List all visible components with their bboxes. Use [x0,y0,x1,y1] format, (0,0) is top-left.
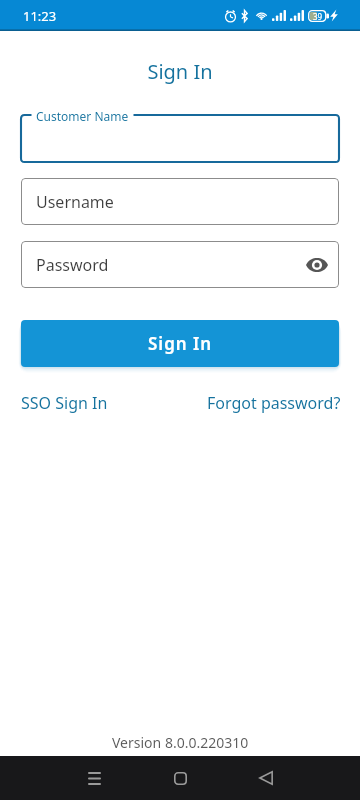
button[interactable]: Sign In [21,320,339,367]
button[interactable]: Forgot password? [207,392,341,414]
staticText: Sign In [148,332,213,355]
button[interactable]: Password [21,241,339,288]
button[interactable]: Home [158,756,202,800]
button[interactable]: SSO Sign In [21,392,108,414]
staticText: Password [36,254,109,276]
staticText: 39 [313,11,323,22]
staticText: Sign In [0,58,360,85]
button[interactable]: Back [244,756,288,800]
staticText: 11:23 [23,7,57,25]
staticText: Username [36,191,114,213]
staticText: Customer Name [36,108,129,124]
staticText: Version 8.0.0.220310 [112,733,249,752]
button[interactable]: Username [21,178,339,225]
button[interactable]: Customer Name [21,115,339,162]
button[interactable]: Menu [72,756,116,800]
button[interactable]: Show password [304,252,330,278]
